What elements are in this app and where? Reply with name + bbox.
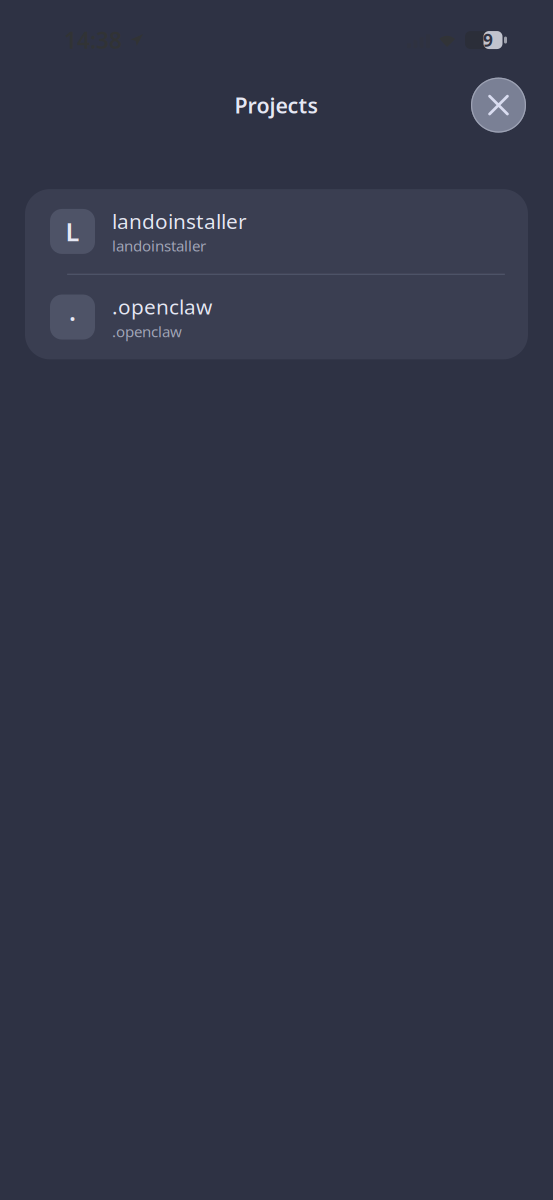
button[interactable]: L [25,189,528,274]
button[interactable]: Close [471,78,526,133]
staticText: L [65,215,79,248]
staticText: landoinstaller [112,207,247,235]
staticText: 14:38 [64,25,122,55]
staticText: Projects [234,91,318,119]
staticText: .openclaw [112,321,182,341]
staticText: . [69,294,76,328]
staticText: landoinstaller [112,236,206,256]
staticText: 9 [483,28,493,51]
button[interactable]: . [25,275,528,359]
staticText: .openclaw [112,293,212,320]
